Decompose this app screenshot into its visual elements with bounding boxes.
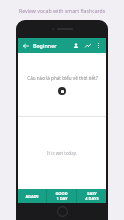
staticText: 1 DAY: [56, 196, 68, 201]
button[interactable]: GOOD: [47, 189, 76, 203]
staticText: 4 DAYS: [85, 196, 99, 201]
button[interactable]: EASY: [77, 189, 106, 203]
button[interactable]: More options: [94, 41, 103, 50]
button[interactable]: Play audio: [58, 87, 66, 95]
staticText: EASY: [87, 191, 97, 196]
staticText: Câu nào là phát biểu về thời tiết?: [27, 75, 98, 81]
staticText: Review vocab with smart flashcards: [19, 7, 106, 14]
staticText: Beginner: [33, 42, 57, 49]
button[interactable]: Profile: [71, 41, 81, 51]
button[interactable]: AGAIN: [18, 189, 46, 203]
button[interactable]: Statistics: [83, 41, 93, 51]
staticText: GOOD: [55, 191, 68, 196]
staticText: It is wet today.: [47, 150, 77, 156]
staticText: AGAIN: [25, 194, 39, 199]
button[interactable]: Back: [21, 41, 31, 51]
